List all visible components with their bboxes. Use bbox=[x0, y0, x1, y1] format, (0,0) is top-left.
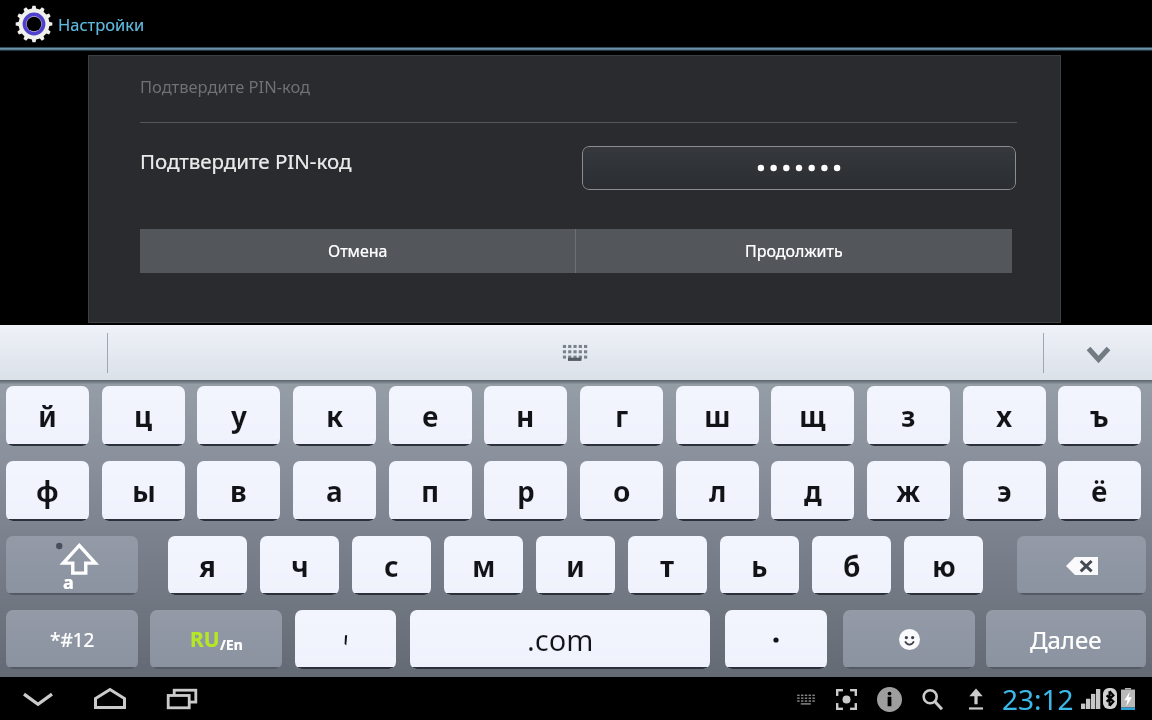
button[interactable]: г bbox=[580, 386, 663, 446]
button[interactable]: ш bbox=[676, 386, 759, 446]
staticText: Далее bbox=[1030, 623, 1102, 656]
staticText: Продолжить bbox=[745, 240, 843, 262]
button[interactable]: й bbox=[6, 386, 89, 446]
button[interactable]: п bbox=[389, 461, 472, 521]
button[interactable]: Backspace bbox=[1017, 536, 1146, 595]
staticText: *#12 bbox=[50, 627, 95, 653]
staticText: ы bbox=[132, 472, 156, 510]
button[interactable]: з bbox=[867, 386, 950, 446]
button[interactable]: б bbox=[812, 536, 891, 595]
button[interactable]: м bbox=[444, 536, 523, 595]
button[interactable]: ё bbox=[1058, 461, 1141, 521]
staticText: к bbox=[326, 397, 344, 435]
staticText: Настройки bbox=[58, 13, 145, 35]
button[interactable]: и bbox=[536, 536, 615, 595]
button[interactable]: л bbox=[676, 461, 759, 521]
button[interactable]: Отмена bbox=[140, 229, 575, 273]
button[interactable]: Info bbox=[875, 684, 903, 714]
button[interactable]: р bbox=[484, 461, 567, 521]
button[interactable]: Screenshot bbox=[832, 684, 860, 714]
staticText: /En bbox=[220, 635, 243, 654]
other: Emoji bbox=[899, 629, 920, 650]
button[interactable] bbox=[582, 146, 1016, 190]
staticText: л bbox=[709, 472, 727, 510]
staticText: ф bbox=[36, 472, 59, 510]
button[interactable]: Upload bbox=[963, 684, 989, 714]
staticText: н bbox=[516, 397, 535, 435]
button[interactable]: *#12 bbox=[6, 610, 138, 669]
button[interactable]: в bbox=[197, 461, 280, 521]
button[interactable]: Далее bbox=[986, 610, 1146, 669]
staticText: Отмена bbox=[328, 240, 388, 262]
other: Comma bbox=[341, 634, 351, 646]
button[interactable]: ы bbox=[102, 461, 185, 521]
other: Period bbox=[771, 635, 781, 645]
button[interactable]: щ bbox=[771, 386, 854, 446]
staticText: Подтвердите PIN-код bbox=[140, 147, 352, 175]
button[interactable]: Hide keyboard bbox=[1044, 325, 1152, 380]
staticText: у bbox=[231, 397, 247, 435]
staticText: .com bbox=[527, 620, 594, 659]
button[interactable]: ф bbox=[6, 461, 89, 521]
button[interactable]: ь bbox=[720, 536, 799, 595]
button[interactable]: н bbox=[484, 386, 567, 446]
button[interactable]: х bbox=[963, 386, 1046, 446]
staticText: в bbox=[230, 472, 247, 510]
button[interactable]: Recents bbox=[154, 677, 210, 720]
button[interactable]: ц bbox=[102, 386, 185, 446]
button[interactable]: я bbox=[168, 536, 247, 595]
button[interactable]: Comma bbox=[295, 610, 396, 669]
staticText: о bbox=[613, 472, 631, 510]
button[interactable]: о bbox=[580, 461, 663, 521]
staticText: г bbox=[615, 397, 629, 435]
button[interactable]: Back bbox=[10, 677, 66, 720]
button[interactable]: ж bbox=[867, 461, 950, 521]
staticText: ъ bbox=[1090, 397, 1109, 435]
staticText: 23:12 bbox=[1002, 680, 1074, 718]
other: Keyboard active bbox=[796, 692, 816, 705]
staticText: р bbox=[517, 472, 535, 510]
button[interactable]: д bbox=[771, 461, 854, 521]
staticText: й bbox=[38, 397, 57, 435]
button[interactable]: э bbox=[963, 461, 1046, 521]
staticText: ш bbox=[704, 397, 731, 435]
button[interactable]: ч bbox=[260, 536, 339, 595]
button[interactable]: е bbox=[389, 386, 472, 446]
staticText: п bbox=[421, 472, 440, 510]
staticText: ё bbox=[1091, 472, 1108, 510]
button[interactable]: Shift bbox=[6, 536, 138, 595]
button[interactable]: а bbox=[293, 461, 376, 521]
button[interactable]: к bbox=[293, 386, 376, 446]
button[interactable]: Emoji bbox=[843, 610, 975, 669]
staticText: ц bbox=[134, 397, 153, 435]
button[interactable]: Period bbox=[725, 610, 827, 669]
staticText: ю bbox=[932, 547, 956, 585]
staticText: ч bbox=[291, 547, 309, 585]
staticText: RU bbox=[190, 625, 220, 654]
button[interactable]: .com bbox=[410, 610, 710, 669]
button[interactable]: с bbox=[352, 536, 431, 595]
staticText: ж bbox=[896, 472, 921, 510]
button[interactable]: Продолжить bbox=[576, 229, 1012, 273]
other: Backspace bbox=[1066, 557, 1098, 575]
button[interactable]: т bbox=[628, 536, 707, 595]
staticText: э bbox=[997, 472, 1012, 510]
staticText: щ bbox=[799, 397, 826, 435]
button[interactable]: ъ bbox=[1058, 386, 1141, 446]
staticText: с bbox=[384, 547, 399, 585]
staticText: a bbox=[63, 570, 74, 595]
staticText: Подтвердите PIN-код bbox=[140, 75, 311, 97]
staticText: и bbox=[566, 547, 585, 585]
staticText: з bbox=[901, 397, 916, 435]
button[interactable]: RU bbox=[150, 610, 282, 669]
staticText: х bbox=[996, 397, 1013, 435]
button[interactable]: Search bbox=[918, 684, 946, 714]
staticText: м bbox=[472, 547, 496, 585]
button[interactable]: ю bbox=[904, 536, 983, 595]
button[interactable]: Home bbox=[82, 677, 138, 720]
staticText: я bbox=[199, 547, 216, 585]
staticText: д bbox=[804, 472, 822, 510]
staticText: а bbox=[326, 472, 343, 510]
button[interactable]: у bbox=[197, 386, 280, 446]
staticText: т bbox=[660, 547, 675, 585]
